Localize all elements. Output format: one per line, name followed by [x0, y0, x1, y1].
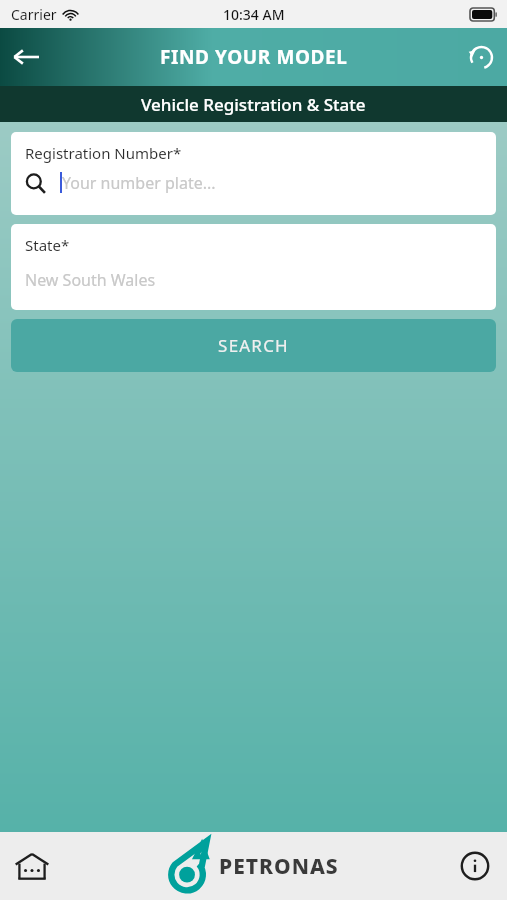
- staticText: SEARCH: [218, 334, 289, 357]
- button[interactable]: State*: [11, 224, 496, 310]
- staticText: Vehicle Registration & State: [141, 93, 366, 116]
- staticText: New South Wales: [25, 269, 156, 291]
- button[interactable]: Home: [4, 838, 60, 894]
- staticText: PETRONAS: [219, 852, 339, 881]
- staticText: Your number plate...: [62, 172, 216, 194]
- staticText: FIND YOUR MODEL: [160, 44, 348, 70]
- button[interactable]: SEARCH: [11, 319, 496, 372]
- button[interactable]: Information: [449, 840, 501, 892]
- button[interactable]: Reset: [455, 31, 507, 83]
- staticText: State*: [25, 235, 70, 255]
- staticText: Carrier: [11, 5, 57, 24]
- button[interactable]: Back: [0, 31, 52, 83]
- staticText: 10:34 AM: [223, 5, 285, 24]
- staticText: Registration Number*: [25, 143, 182, 163]
- button[interactable]: Registration Number*: [11, 132, 496, 215]
